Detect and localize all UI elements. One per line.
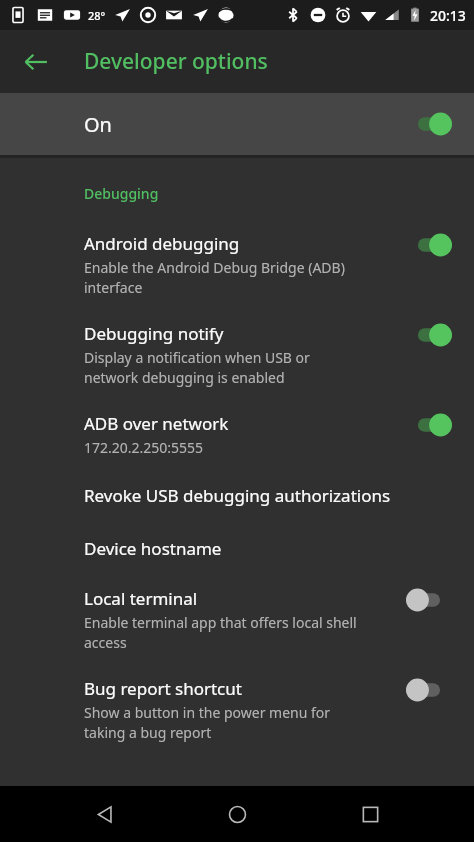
staticText: Revoke USB debugging authorizations [84,484,391,507]
button[interactable]: Back [75,786,133,842]
button[interactable]: Home [208,786,266,842]
button[interactable]: Revoke USB debugging authorizations [0,484,474,507]
staticText: Android debugging [84,232,240,255]
staticText: 28° [88,8,106,23]
staticText: Local terminal [84,587,198,610]
staticText: Enable the Android Debug Bridge (ADB) in… [84,258,345,297]
staticText: 172.20.2.250:5555 [84,438,204,457]
button[interactable]: Back [14,40,58,84]
button[interactable]: Local terminal [0,587,474,652]
staticText: Debugging notify [84,322,224,345]
button[interactable]: ADB over network [0,412,474,457]
staticText: Display a notification when USB or netwo… [84,348,310,387]
staticText: Enable terminal app that offers local sh… [84,613,357,652]
button[interactable]: Debugging notify [0,322,474,387]
button[interactable]: Bug report shortcut [0,677,474,742]
staticText: Debugging [84,184,159,203]
staticText: Device hostname [84,537,222,560]
button[interactable]: Android debugging [0,232,474,297]
staticText: Developer options [84,47,268,76]
staticText: Show a button in the power menu for taki… [84,703,331,742]
staticText: 20:13 [430,6,466,25]
button[interactable]: Recent apps [341,786,399,842]
staticText: Bug report shortcut [84,677,242,700]
button[interactable]: Device hostname [0,537,474,560]
staticText: On [84,111,112,138]
staticText: ADB over network [84,412,229,435]
button[interactable]: On [0,93,474,155]
